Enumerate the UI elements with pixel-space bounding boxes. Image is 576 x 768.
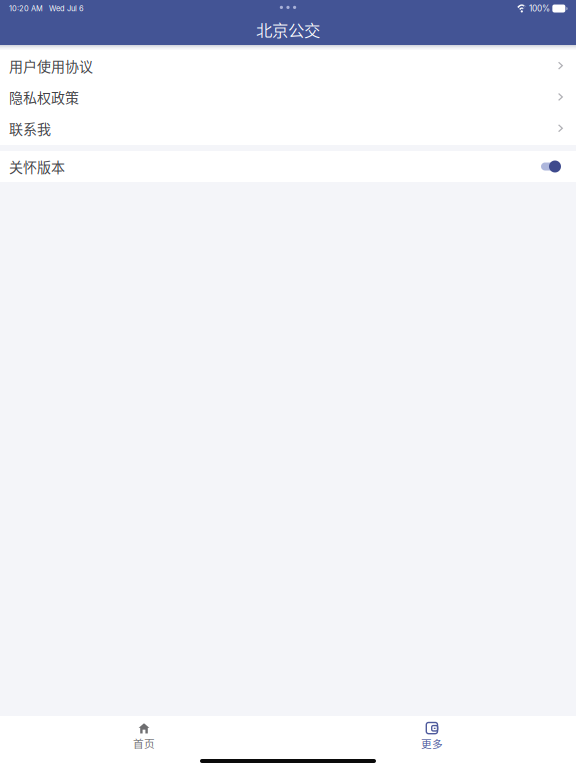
- staticText: 隐私权政策: [9, 87, 79, 107]
- staticText: 10:20 AM Wed Jul 6: [9, 4, 84, 13]
- staticText: 首页: [133, 735, 155, 751]
- button[interactable]: 更多: [288, 724, 576, 750]
- staticText: 100%: [529, 3, 550, 13]
- staticText: 联系我: [9, 118, 51, 138]
- staticText: 北京公交: [256, 18, 320, 41]
- button[interactable]: 隐私权政策: [0, 81, 576, 113]
- button[interactable]: 关怀版本: [0, 151, 576, 182]
- staticText: 更多: [421, 736, 443, 751]
- button[interactable]: 用户使用协议: [0, 50, 576, 81]
- button[interactable]: 首页: [0, 724, 288, 750]
- staticText: 关怀版本: [9, 156, 65, 177]
- button[interactable]: 联系我: [0, 113, 576, 144]
- staticText: 用户使用协议: [9, 55, 93, 76]
